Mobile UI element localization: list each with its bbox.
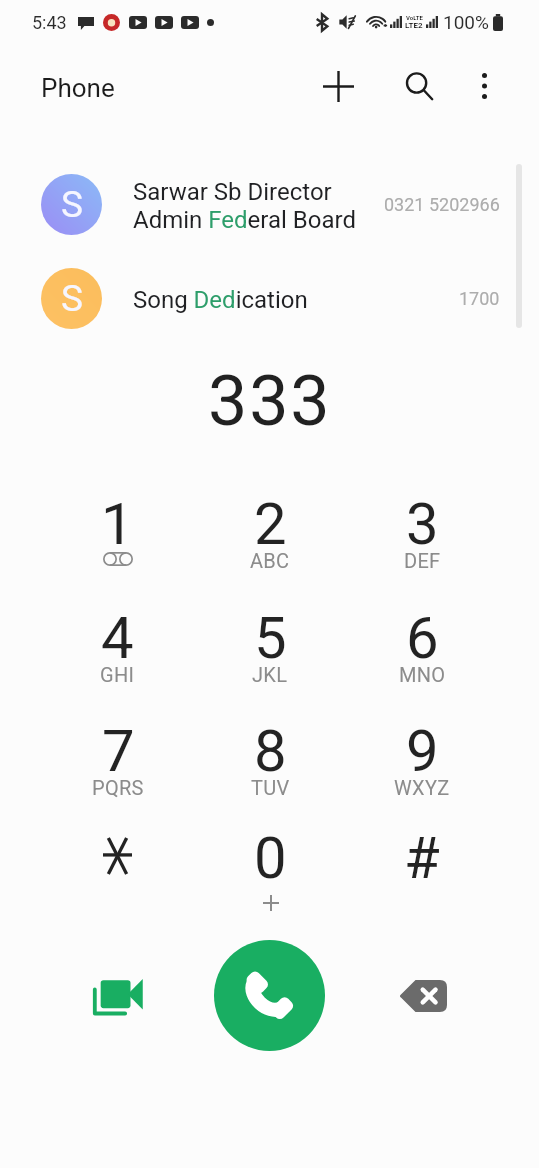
staticText: GHI <box>100 663 135 686</box>
staticText: TUV <box>251 776 290 799</box>
button[interactable]: Search <box>391 58 447 114</box>
staticText: JKL <box>252 663 288 686</box>
staticText: Song Dedication <box>133 286 308 314</box>
button[interactable]: 2 <box>194 483 346 597</box>
staticText: VoLTE <box>406 14 423 21</box>
staticText: 2 <box>254 490 287 558</box>
staticText: 3 <box>406 490 439 558</box>
staticText: S <box>61 183 83 226</box>
staticText: 5 <box>254 604 287 672</box>
staticText: S <box>61 277 83 320</box>
staticText: 1 <box>101 490 134 558</box>
button[interactable]: 0 <box>194 817 346 931</box>
button[interactable]: 5 <box>194 597 346 711</box>
staticText: 8 <box>254 717 287 785</box>
button[interactable]: More options <box>456 58 512 114</box>
button[interactable]: Call <box>214 940 325 1051</box>
button[interactable]: Add contact <box>310 58 366 114</box>
button[interactable]: 7 <box>41 710 194 824</box>
staticText: Phone <box>41 73 115 103</box>
button[interactable]: 1 <box>41 483 194 597</box>
button[interactable] <box>41 817 194 931</box>
staticText: 0 <box>254 824 287 892</box>
button[interactable]: 3 <box>346 483 498 597</box>
staticText: 5:43 <box>32 12 67 33</box>
staticText: ABC <box>250 549 290 572</box>
staticText: LTE2 <box>405 21 423 30</box>
staticText: 1700 <box>459 288 500 309</box>
button[interactable]: Backspace <box>382 955 464 1037</box>
staticText: 7 <box>102 717 135 785</box>
staticText: WXYZ <box>394 776 450 799</box>
button[interactable]: Video call <box>76 955 158 1037</box>
staticText: 6 <box>406 604 439 672</box>
staticText: # <box>404 824 440 892</box>
button[interactable]: # <box>346 817 498 931</box>
button[interactable]: 4 <box>41 597 194 711</box>
staticText: Sarwar Sb Director <box>133 178 332 206</box>
staticText: Admin Federal Board <box>133 206 356 234</box>
staticText: 333 <box>208 360 332 442</box>
button[interactable]: S <box>0 251 539 345</box>
button[interactable]: 8 <box>194 710 346 824</box>
button[interactable]: S <box>0 157 539 251</box>
button[interactable]: 6 <box>346 597 498 711</box>
staticText: PQRS <box>92 776 144 799</box>
staticText: 100% <box>443 11 489 33</box>
staticText: 9 <box>406 717 439 785</box>
staticText: 4 <box>101 604 134 672</box>
staticText: DEF <box>404 549 441 572</box>
staticText: MNO <box>399 663 446 686</box>
staticText: 0321 5202966 <box>384 194 500 215</box>
button[interactable]: 9 <box>346 710 498 824</box>
